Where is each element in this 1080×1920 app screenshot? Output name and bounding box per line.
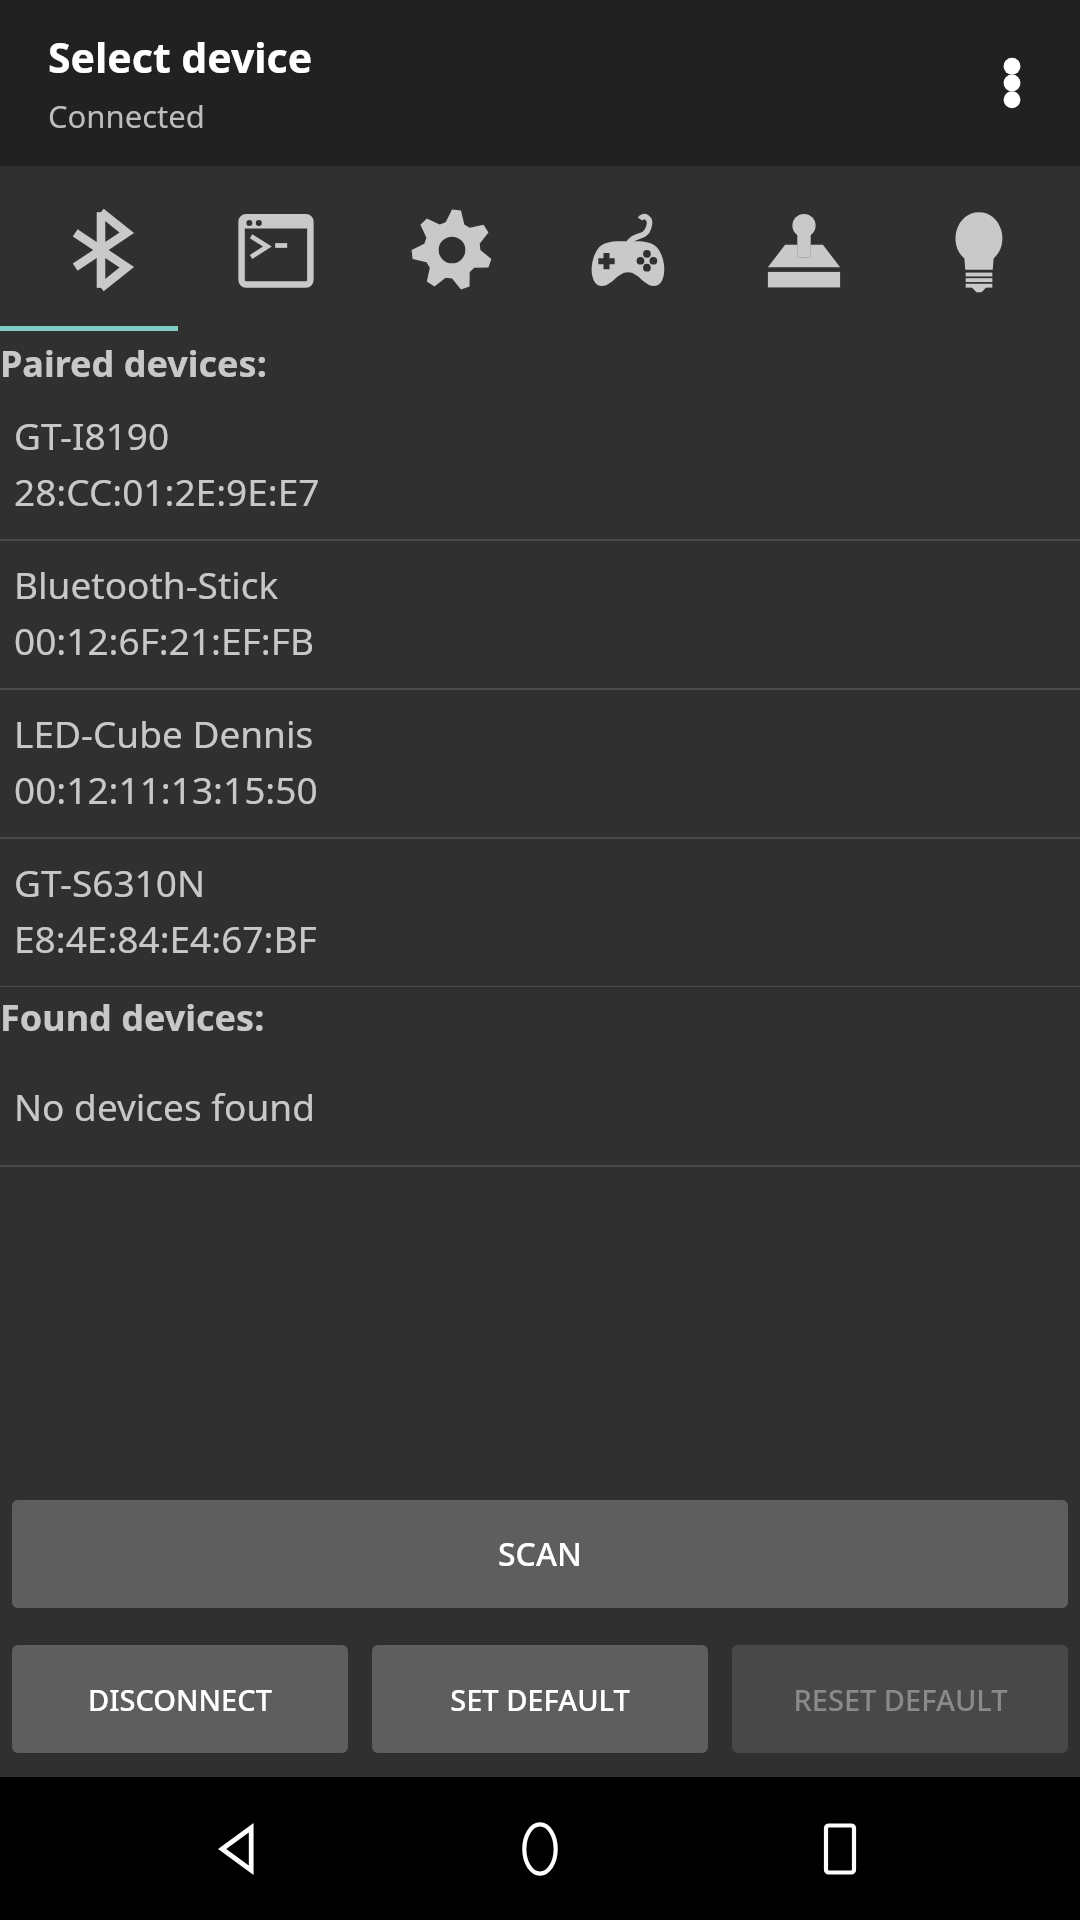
staticText: DISCONNECT	[88, 1680, 272, 1719]
button[interactable]: Gamepad	[553, 166, 703, 334]
staticText: GT-S6310N	[14, 857, 206, 907]
button[interactable]: No devices found	[0, 1047, 1080, 1165]
button[interactable]: RESET DEFAULT	[732, 1645, 1068, 1753]
staticText: Bluetooth-Stick	[14, 559, 279, 609]
button[interactable]: Settings	[377, 166, 527, 334]
button[interactable]: More options	[964, 35, 1060, 131]
button[interactable]: Home	[480, 1789, 600, 1909]
button[interactable]: LED-Cube Dennis	[0, 690, 1080, 837]
button[interactable]: GT-S6310N	[0, 839, 1080, 986]
button[interactable]: Recents	[780, 1789, 900, 1909]
staticText: Paired devices:	[0, 339, 267, 388]
button[interactable]: SCAN	[12, 1500, 1068, 1608]
staticText: 28:CC:01:2E:9E:E7	[14, 466, 320, 516]
staticText: 00:12:11:13:15:50	[14, 764, 318, 814]
button[interactable]: GT-I8190	[0, 392, 1080, 539]
button[interactable]: Bluetooth	[26, 166, 176, 334]
staticText: Connected	[48, 95, 205, 137]
staticText: LED-Cube Dennis	[14, 708, 314, 758]
staticText: SCAN	[498, 1532, 582, 1576]
staticText: RESET DEFAULT	[793, 1680, 1008, 1719]
staticText: Found devices:	[0, 993, 265, 1042]
staticText: 00:12:6F:21:EF:FB	[14, 615, 314, 665]
button[interactable]: Terminal	[201, 166, 351, 334]
staticText: SET DEFAULT	[450, 1680, 630, 1719]
staticText: No devices found	[14, 1081, 315, 1131]
staticText: Select device	[48, 29, 313, 85]
button[interactable]: Back	[180, 1789, 300, 1909]
button[interactable]: DISCONNECT	[12, 1645, 348, 1753]
staticText: E8:4E:84:E4:67:BF	[14, 913, 317, 963]
button[interactable]: Joystick	[729, 166, 879, 334]
button[interactable]: SET DEFAULT	[372, 1645, 708, 1753]
button[interactable]: Light	[904, 166, 1054, 334]
staticText: GT-I8190	[14, 410, 170, 460]
button[interactable]: Bluetooth-Stick	[0, 541, 1080, 688]
